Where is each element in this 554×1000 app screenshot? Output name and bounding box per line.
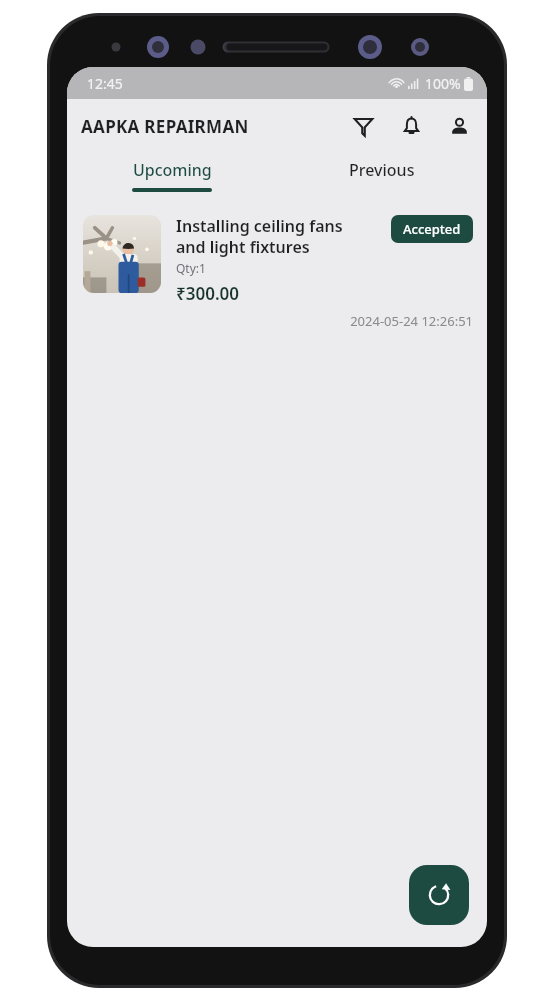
button[interactable]: Refresh <box>409 865 469 925</box>
staticText: AAPKA REPAIRMAN <box>81 115 249 138</box>
button[interactable]: Filter <box>345 108 381 144</box>
button[interactable]: Previous <box>277 153 487 197</box>
button[interactable]: Installing ceiling fans and light fixtur… <box>67 211 487 336</box>
staticText: 100% <box>425 74 461 93</box>
button[interactable]: Profile <box>441 108 477 144</box>
staticText: Qty:1 <box>176 260 206 276</box>
staticText: Accepted <box>403 220 461 238</box>
staticText: Previous <box>349 159 415 181</box>
staticText: ₹300.00 <box>176 282 240 305</box>
button[interactable]: Upcoming <box>67 153 277 197</box>
button[interactable]: Notifications <box>393 108 429 144</box>
staticText: Installing ceiling fans and light fixtur… <box>176 215 385 258</box>
staticText: 2024-05-24 12:26:51 <box>176 312 473 330</box>
staticText: 12:45 <box>87 74 123 93</box>
button[interactable]: Accepted <box>391 215 473 243</box>
staticText: Upcoming <box>133 159 212 181</box>
